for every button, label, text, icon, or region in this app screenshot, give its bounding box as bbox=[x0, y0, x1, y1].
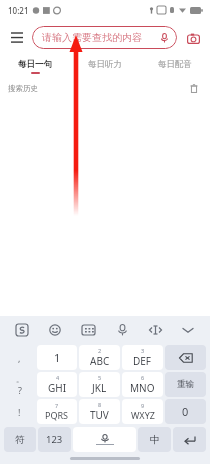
staticText: 10:21 bbox=[8, 5, 29, 16]
staticText: MNO bbox=[130, 381, 155, 395]
button[interactable]: Voice input bbox=[110, 318, 134, 342]
staticText: 9 bbox=[141, 402, 145, 409]
staticText: 8 bbox=[98, 401, 102, 408]
button[interactable]: Keyboard layout bbox=[76, 318, 100, 342]
button[interactable]: Voice search bbox=[157, 31, 171, 45]
staticText: 重输 bbox=[177, 379, 194, 390]
button[interactable]: Clear search history bbox=[186, 80, 202, 96]
button[interactable]: 重输 bbox=[165, 372, 206, 397]
staticText: PQRS bbox=[45, 409, 69, 421]
staticText: JKL bbox=[92, 381, 107, 395]
button[interactable]: 3 bbox=[122, 345, 163, 370]
button[interactable]: 9 bbox=[122, 399, 163, 424]
button[interactable]: 中 bbox=[138, 427, 171, 452]
button[interactable]: 1 bbox=[37, 345, 77, 370]
button[interactable]: Input method bbox=[10, 318, 34, 342]
button[interactable]: 4 bbox=[37, 372, 77, 397]
staticText: 中 bbox=[150, 433, 160, 446]
button[interactable]: 每日一句 bbox=[0, 55, 70, 78]
staticText: GHI bbox=[48, 381, 67, 395]
button[interactable]: 每日配音 bbox=[140, 55, 210, 78]
staticText: 2 bbox=[98, 347, 102, 354]
button[interactable]: Hide keyboard bbox=[176, 318, 200, 342]
button[interactable]: 每日听力 bbox=[70, 55, 140, 78]
staticText: ! bbox=[18, 406, 21, 418]
staticText: 4 bbox=[56, 374, 60, 381]
button[interactable]: 8 bbox=[79, 399, 120, 424]
staticText: WXYZ bbox=[131, 409, 155, 421]
staticText: TUV bbox=[90, 408, 109, 422]
staticText: 123 bbox=[46, 433, 63, 446]
button[interactable]: 2 bbox=[79, 345, 120, 370]
button[interactable]: 符 bbox=[4, 427, 36, 452]
staticText: ABC bbox=[90, 354, 110, 368]
staticText: 1 bbox=[54, 350, 61, 365]
staticText: 搜索历史 bbox=[8, 84, 38, 93]
button[interactable]: 5 bbox=[79, 372, 120, 397]
button[interactable]: 。 bbox=[3, 371, 36, 398]
staticText: DEF bbox=[133, 354, 152, 368]
staticText: 请输入需要查找的内容 bbox=[42, 31, 157, 44]
button[interactable]: 7 bbox=[37, 399, 77, 424]
staticText: 每日一句 bbox=[18, 59, 52, 70]
button[interactable]: 6 bbox=[122, 372, 163, 397]
staticText: 7 bbox=[55, 402, 59, 409]
button[interactable]: Menu bbox=[7, 28, 27, 48]
button[interactable]: Backspace bbox=[165, 345, 206, 370]
button[interactable]: Space bbox=[73, 427, 136, 452]
button[interactable]: Camera search bbox=[183, 28, 203, 48]
button[interactable]: ! bbox=[3, 398, 36, 425]
button[interactable]: , bbox=[3, 344, 36, 371]
staticText: ? bbox=[18, 384, 22, 396]
button[interactable]: 123 bbox=[38, 427, 71, 452]
button[interactable]: 请输入需要查找的内容 bbox=[32, 26, 177, 49]
button[interactable]: Emoji bbox=[43, 318, 67, 342]
staticText: 0 bbox=[182, 404, 189, 419]
staticText: 。 bbox=[16, 374, 24, 384]
staticText: 每日配音 bbox=[158, 59, 192, 70]
staticText: 每日听力 bbox=[88, 59, 122, 70]
staticText: 6 bbox=[141, 374, 145, 381]
button[interactable]: Cursor control bbox=[143, 318, 167, 342]
button[interactable]: 0 bbox=[165, 399, 206, 424]
staticText: 5 bbox=[98, 374, 102, 381]
staticText: 3 bbox=[141, 347, 145, 354]
staticText: 符 bbox=[15, 434, 25, 446]
staticText: , bbox=[18, 352, 21, 364]
button[interactable]: Enter bbox=[173, 427, 206, 452]
